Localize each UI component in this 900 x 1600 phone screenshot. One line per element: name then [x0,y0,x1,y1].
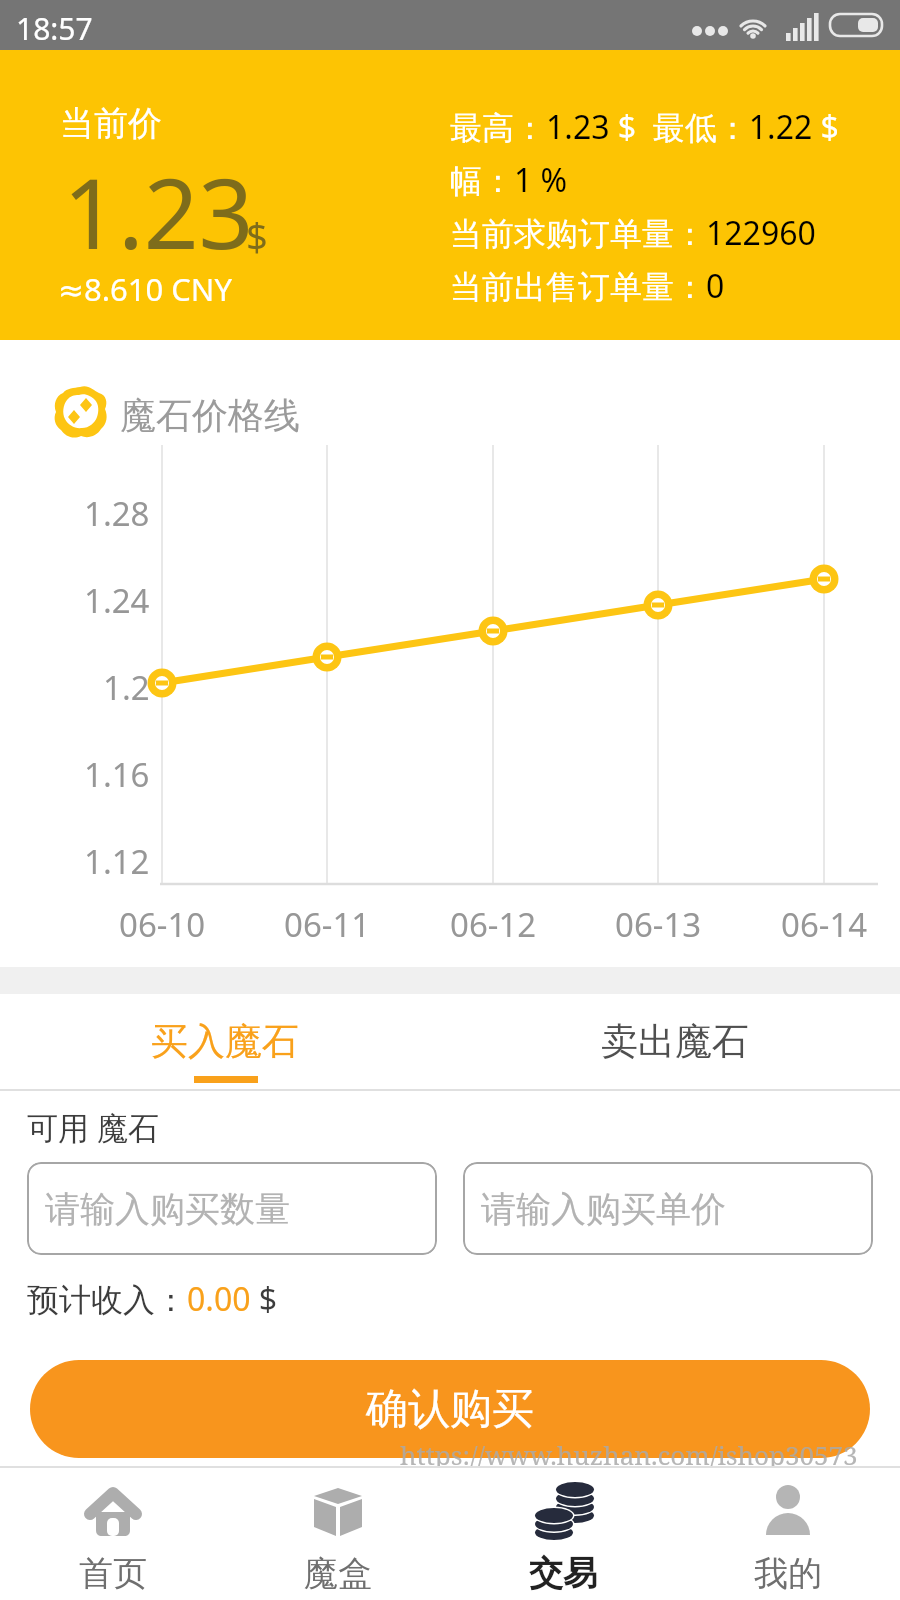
staticText: 当前求购订单量：122960 [450,211,816,255]
staticText: 请输入购买单价 [481,1187,726,1231]
staticText: $ [246,210,268,262]
staticText: 买入魔石 [151,1018,299,1065]
staticText: 幅：1 % [450,158,568,202]
button[interactable]: 买入魔石 [0,994,450,1089]
staticText: 我的 [754,1552,822,1595]
staticText: 06-11 [284,902,371,947]
staticText: 06-10 [119,902,206,947]
staticText: 魔盒 [304,1552,372,1595]
button[interactable]: 卖出魔石 [450,994,900,1089]
staticText: 06-14 [781,902,868,947]
button[interactable]: 我的 [675,1468,900,1600]
button[interactable]: 确认购买 [30,1360,870,1458]
staticText: 1.12 [84,839,150,884]
staticText: 当前价 [60,102,162,145]
staticText: 魔石价格线 [120,393,300,438]
staticText: 可用 魔石 [27,1106,160,1148]
button[interactable]: 请输入购买单价 [463,1162,873,1255]
staticText: ≈8.610 CNY [58,268,232,310]
button[interactable]: 魔盒 [225,1468,450,1600]
button[interactable]: 首页 [0,1468,225,1600]
staticText: 请输入购买数量 [45,1187,290,1231]
staticText: 交易 [529,1552,597,1595]
staticText: 预计收入：0.00 $ [27,1277,278,1321]
staticText: 卖出魔石 [601,1018,749,1065]
button[interactable]: 请输入购买数量 [27,1162,437,1255]
staticText: 最高：1.23 $ 最低：1.22 $ [450,105,839,149]
staticText: 06-13 [615,902,702,947]
staticText: 1.28 [84,491,150,536]
staticText: https://www.huzhan.com/ishop30573 [400,1437,858,1472]
staticText: 确认购买 [366,1383,534,1436]
staticText: 06-12 [450,902,537,947]
staticText: 1.23 [63,146,254,277]
staticText: 18:57 [16,8,93,49]
staticText: 当前出售订单量：0 [450,264,725,308]
staticText: 1.16 [84,752,150,797]
staticText: 首页 [79,1552,147,1595]
staticText: 1.2 [103,665,150,710]
staticText: 1.24 [84,578,150,623]
button[interactable]: 交易 [450,1468,675,1600]
